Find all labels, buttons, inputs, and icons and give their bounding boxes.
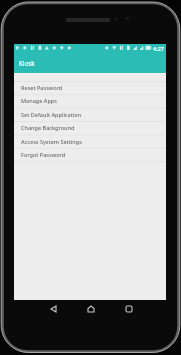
staticText: Reset Password [21, 84, 63, 91]
staticText: Manage Apps [21, 97, 57, 104]
staticText: Set Default Application [21, 111, 82, 118]
button[interactable]: Back [46, 301, 60, 317]
staticText: 4:27 [153, 45, 164, 52]
staticText: Change Background [21, 124, 75, 131]
staticText: Access System Settings [21, 138, 82, 145]
button[interactable]: Forgot Password [14, 148, 166, 161]
button[interactable]: Recents [122, 301, 136, 317]
button[interactable]: Manage Apps [14, 94, 166, 107]
button[interactable]: Home [84, 301, 98, 317]
staticText: Forgot Password [21, 151, 66, 158]
button[interactable]: Set Default Application [14, 108, 166, 121]
button[interactable]: Change Background [14, 121, 166, 134]
staticText: Kiosk [19, 59, 35, 67]
button[interactable]: Access System Settings [14, 135, 166, 148]
button[interactable]: Reset Password [14, 81, 166, 94]
